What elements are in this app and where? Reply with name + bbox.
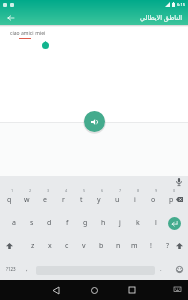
button[interactable]: s [23,211,41,234]
button[interactable] [124,280,140,300]
staticText: 2 [29,188,32,193]
button[interactable] [84,111,105,132]
staticText: , [26,265,28,273]
button[interactable]: j [111,211,129,234]
button[interactable]: e [36,188,54,211]
staticText: m [131,241,138,251]
staticText: b [99,241,104,251]
staticText: p [169,195,174,205]
button[interactable] [170,188,188,211]
staticText: ?123 [6,266,16,272]
staticText: 5 [83,188,86,193]
staticText: . [160,265,162,273]
staticText: u [115,195,120,205]
staticText: f [66,218,69,228]
staticText: amici [21,30,34,37]
staticText: r [62,195,65,205]
button[interactable]: v [75,234,93,257]
staticText: 1 [11,188,14,193]
staticText: c [65,241,69,251]
staticText: x [48,241,52,251]
staticText: 8 [137,188,140,193]
staticText: الناطق الايطالي [140,13,183,22]
staticText: 7 [119,188,122,193]
staticText: 3 [47,188,50,193]
button[interactable]: ! [142,234,160,257]
staticText: w [24,195,30,205]
staticText: ! [150,241,152,251]
button[interactable]: ?123 [1,257,21,280]
button[interactable]: q [0,188,18,211]
button[interactable] [171,234,188,257]
staticText: ? [166,241,170,251]
staticText: ciao [10,30,21,37]
staticText: i [134,195,136,205]
button[interactable]: f [58,211,76,234]
button[interactable] [172,176,186,188]
staticText: s [30,218,34,228]
button[interactable]: n [109,234,127,257]
button[interactable]: i [126,188,144,211]
button[interactable]: ? [159,234,177,257]
button[interactable] [5,12,16,23]
staticText: miei [34,30,46,37]
button[interactable]: w [18,188,36,211]
staticText: k [136,218,140,228]
staticText: 6:15 [177,2,185,7]
staticText: g [83,218,88,228]
button[interactable]: y [90,188,108,211]
button[interactable]: b [92,234,110,257]
button[interactable] [169,280,185,300]
staticText: v [82,241,86,251]
staticText: a [12,218,16,228]
staticText: 6 [101,188,104,193]
button[interactable]: k [129,211,147,234]
button[interactable] [168,217,181,230]
button[interactable]: t [72,188,90,211]
staticText: h [101,218,106,228]
button[interactable]: r [54,188,72,211]
staticText: o [151,195,156,205]
button[interactable]: z [24,234,42,257]
button[interactable] [86,280,102,300]
button[interactable]: l [147,211,165,234]
button[interactable]: c [58,234,76,257]
staticText: 0 [173,188,176,193]
staticText: d [47,218,52,228]
button[interactable]: . [156,257,166,280]
staticText: l [155,218,157,228]
button[interactable]: o [144,188,162,211]
button[interactable] [48,280,64,300]
button[interactable]: a [5,211,23,234]
staticText: t [80,195,83,205]
staticText: j [119,218,121,228]
button[interactable]: u [108,188,126,211]
staticText: e [43,195,47,205]
button[interactable] [170,259,188,280]
button[interactable]: m [125,234,143,257]
staticText: n [116,241,121,251]
staticText: y [97,195,101,205]
button[interactable]: d [40,211,58,234]
button[interactable] [1,234,18,257]
button[interactable]: x [41,234,59,257]
button[interactable]: p [162,188,180,211]
staticText: 9 [155,188,158,193]
button[interactable]: , [22,257,32,280]
button[interactable]: h [94,211,112,234]
staticText: q [7,195,12,205]
staticText: z [31,241,35,251]
button[interactable]: g [76,211,94,234]
staticText: 4 [65,188,68,193]
